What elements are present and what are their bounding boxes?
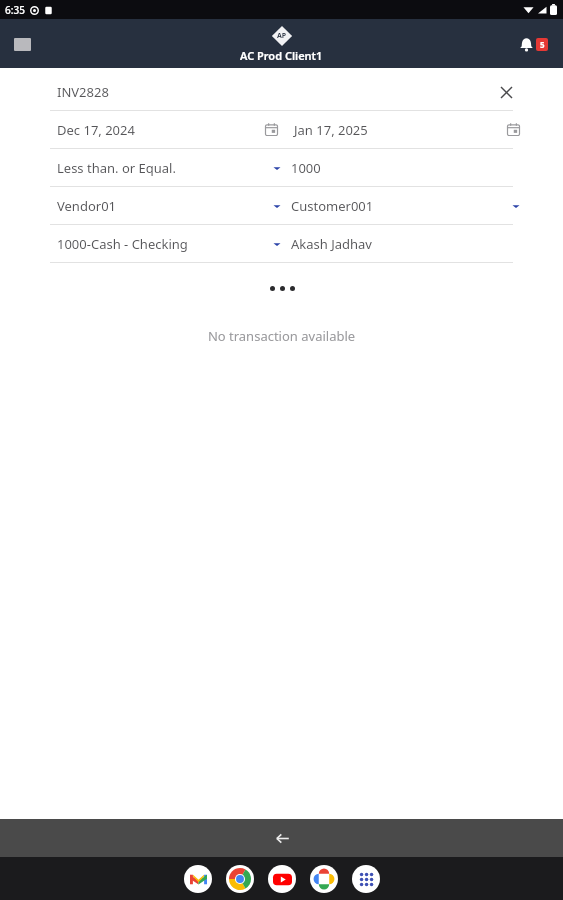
staticText: 6:35: [5, 3, 25, 17]
staticText: Vendor01: [57, 197, 117, 215]
button[interactable]: Menu: [8, 30, 36, 58]
staticText: Dec 17, 2024: [57, 121, 135, 139]
button[interactable]: Gmail: [184, 865, 212, 893]
staticText: Less than. or Equal.: [57, 159, 176, 177]
staticText: Akash Jadhav: [291, 235, 372, 253]
staticText: 5: [540, 39, 545, 50]
staticText: Customer001: [291, 197, 374, 215]
button[interactable]: Customer001: [285, 187, 520, 224]
button[interactable]: YouTube: [268, 865, 296, 893]
button[interactable]: Chrome: [226, 865, 254, 893]
button[interactable]: Dec 17, 2024: [50, 111, 282, 148]
button[interactable]: 1000-Cash - Checking: [50, 225, 285, 262]
button[interactable]: 1000: [285, 149, 520, 186]
button[interactable]: More options: [259, 277, 305, 299]
button[interactable]: Vendor01: [50, 187, 285, 224]
button[interactable]: Clear search: [494, 80, 518, 104]
button[interactable]: Back: [262, 819, 302, 857]
staticText: Jan 17, 2025: [294, 121, 368, 139]
button[interactable]: Google Photos: [310, 865, 338, 893]
staticText: 1000-Cash - Checking: [57, 235, 188, 253]
button[interactable]: Jan 17, 2025: [288, 111, 520, 148]
staticText: AP: [277, 31, 287, 41]
button[interactable]: Akash Jadhav: [285, 225, 520, 262]
button[interactable]: Notifications: [513, 29, 553, 59]
staticText: 1000: [291, 159, 321, 177]
button[interactable]: All apps: [352, 865, 380, 893]
staticText: AC Prod Client1: [240, 48, 323, 63]
button[interactable]: INV2828: [0, 73, 563, 110]
staticText: INV2828: [57, 83, 109, 101]
button[interactable]: Less than. or Equal.: [50, 149, 285, 186]
staticText: No transaction available: [0, 327, 563, 345]
